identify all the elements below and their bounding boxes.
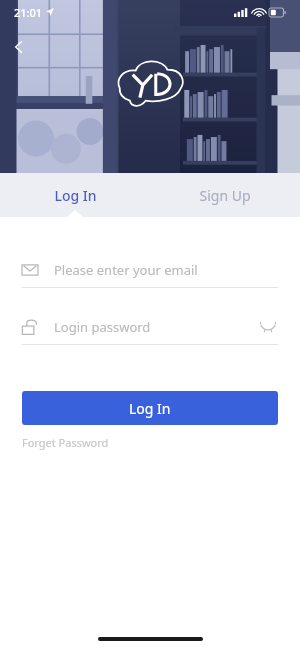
button[interactable]: Login password	[22, 310, 278, 344]
button[interactable]: Please enter your email	[22, 253, 278, 287]
staticText: Log In	[129, 399, 171, 418]
staticText: 21:01	[14, 5, 43, 20]
button[interactable]: Forget Password	[22, 435, 109, 450]
staticText: Log In	[54, 186, 97, 205]
staticText: Forget Password	[22, 435, 109, 450]
button[interactable]: Log In	[22, 391, 278, 425]
button[interactable]: Sign Up	[150, 173, 300, 217]
button[interactable]: Log In	[0, 173, 150, 217]
button[interactable]: Back	[6, 34, 32, 60]
button[interactable]: Show password	[258, 317, 278, 337]
staticText: Login password	[54, 318, 151, 336]
staticText: Please enter your email	[54, 261, 198, 279]
staticText: Sign Up	[199, 186, 251, 205]
